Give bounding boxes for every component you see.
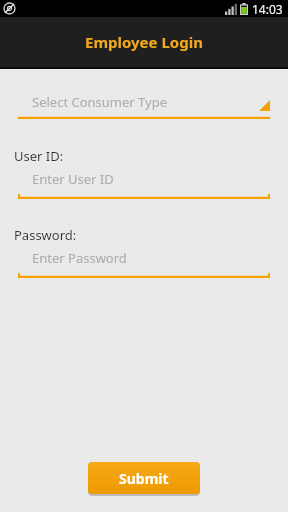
staticText: Enter User ID — [32, 170, 114, 188]
staticText: User ID: — [14, 147, 64, 165]
staticText: Select Consumer Type — [32, 93, 168, 111]
staticText: Password: — [14, 226, 77, 244]
other: Open consumer type dropdown — [259, 100, 270, 111]
button[interactable]: User ID: — [0, 147, 288, 199]
button[interactable]: Password: — [0, 226, 288, 278]
button[interactable]: Submit — [88, 462, 200, 494]
staticText: Employee Login — [85, 32, 203, 52]
button[interactable]: Select Consumer Type — [0, 91, 288, 119]
staticText: Enter Password — [32, 249, 127, 267]
staticText: Submit — [119, 469, 169, 488]
staticText: 14:03 — [252, 1, 283, 17]
